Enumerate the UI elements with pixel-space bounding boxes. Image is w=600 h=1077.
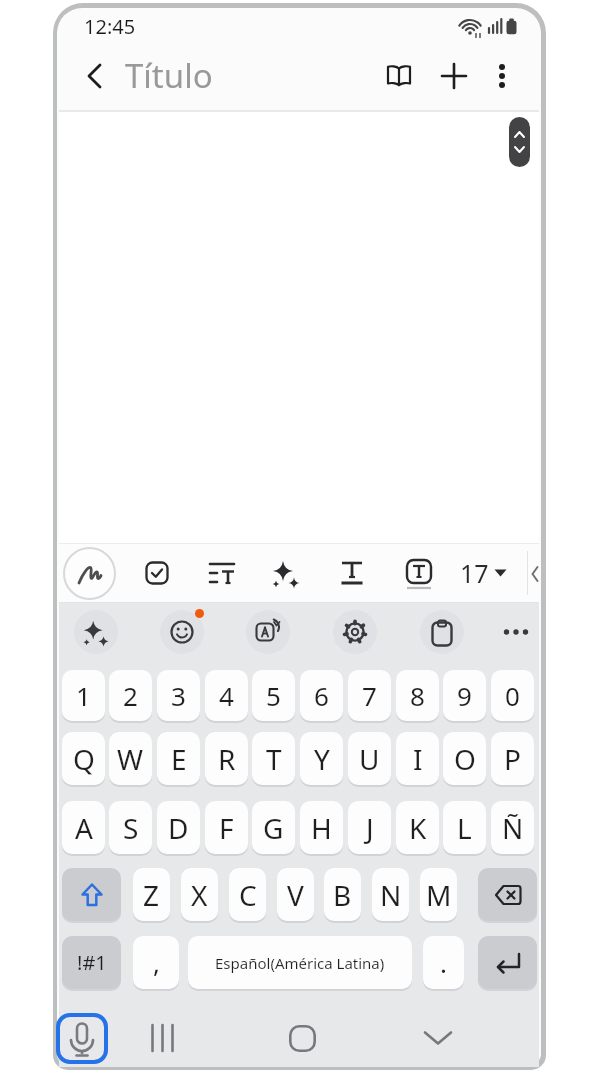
button[interactable] (62, 868, 121, 921)
button[interactable] (400, 555, 438, 593)
button[interactable]: 9 (443, 670, 486, 721)
button[interactable]: 8 (396, 670, 439, 721)
button[interactable]: N (372, 868, 409, 921)
staticText: Español(América Latina) (215, 953, 385, 973)
button[interactable] (334, 555, 370, 591)
button[interactable]: 4 (205, 670, 248, 721)
button[interactable]: A (62, 801, 105, 854)
staticText: Z (143, 876, 160, 914)
button[interactable] (139, 555, 175, 591)
button[interactable]: H (300, 801, 343, 854)
button[interactable]: 7 (348, 670, 391, 721)
button[interactable]: Español(América Latina) (188, 936, 412, 989)
staticText: G (263, 809, 284, 847)
staticText: C (239, 876, 257, 914)
staticText: Y (314, 740, 330, 778)
button[interactable]: X (181, 868, 218, 921)
button[interactable]: B (324, 868, 361, 921)
button[interactable] (56, 1013, 108, 1064)
button[interactable] (143, 1018, 183, 1058)
button[interactable]: L (443, 801, 486, 854)
staticText: D (168, 809, 189, 847)
button[interactable]: 2 (109, 670, 152, 721)
button[interactable] (494, 610, 538, 654)
button[interactable]: T (252, 732, 295, 785)
button[interactable]: I (396, 732, 439, 785)
staticText: 8 (410, 678, 425, 713)
staticText: A (75, 809, 93, 847)
staticText: Ñ (502, 809, 524, 847)
button[interactable] (333, 610, 377, 654)
staticText: L (457, 809, 472, 847)
button[interactable]: D (157, 801, 200, 854)
staticText: 12:45 (84, 13, 136, 40)
staticText: S (123, 809, 139, 847)
staticText: , (153, 945, 160, 980)
button[interactable] (437, 58, 471, 94)
button[interactable]: Q (62, 732, 105, 785)
button[interactable]: F (205, 801, 248, 854)
button[interactable] (160, 610, 204, 654)
button[interactable]: W (109, 732, 152, 785)
staticText: Q (73, 740, 95, 778)
button[interactable]: C (229, 868, 266, 921)
button[interactable]: 3 (157, 670, 200, 721)
button[interactable]: K (396, 801, 439, 854)
staticText: J (366, 809, 374, 847)
button[interactable] (478, 868, 537, 921)
button[interactable]: M (420, 868, 457, 921)
button[interactable] (509, 117, 530, 167)
button[interactable]: , (133, 936, 179, 989)
staticText: 4 (219, 678, 234, 713)
button[interactable]: 0 (491, 670, 534, 721)
button[interactable]: G (252, 801, 295, 854)
staticText: W (117, 740, 144, 778)
button[interactable] (478, 936, 537, 989)
button[interactable] (268, 555, 304, 591)
staticText: B (333, 876, 352, 914)
button[interactable] (246, 610, 290, 654)
button[interactable]: 1 (62, 670, 105, 721)
staticText: 1 (76, 678, 91, 713)
button[interactable]: 6 (300, 670, 343, 721)
staticText: F (219, 809, 234, 847)
button[interactable]: J (348, 801, 391, 854)
staticText: 2 (123, 678, 138, 713)
button[interactable]: 5 (252, 670, 295, 721)
button[interactable]: U (348, 732, 391, 785)
staticText: . (440, 945, 447, 980)
staticText: 6 (314, 678, 329, 713)
button[interactable] (418, 1018, 458, 1058)
staticText: M (426, 876, 452, 914)
button[interactable] (63, 547, 116, 600)
button[interactable] (487, 58, 517, 94)
button[interactable] (204, 555, 240, 591)
staticText: 9 (457, 678, 472, 713)
staticText: R (218, 740, 236, 778)
staticText: 3 (171, 678, 186, 713)
button[interactable]: O (443, 732, 486, 785)
staticText: X (191, 876, 208, 914)
staticText: 0 (505, 678, 520, 713)
button[interactable] (74, 610, 118, 654)
button[interactable]: R (205, 732, 248, 785)
button[interactable]: S (109, 801, 152, 854)
button[interactable]: E (157, 732, 200, 785)
staticText: 7 (362, 678, 377, 713)
button[interactable]: Z (133, 868, 170, 921)
staticText: T (266, 740, 282, 778)
button[interactable] (381, 58, 417, 94)
button[interactable]: !#1 (62, 936, 121, 989)
staticText: U (359, 740, 380, 778)
button[interactable]: V (277, 868, 314, 921)
button[interactable]: 17 (460, 551, 510, 595)
staticText: I (413, 740, 423, 778)
button[interactable] (282, 1018, 322, 1058)
button[interactable] (420, 610, 464, 654)
button[interactable]: Y (300, 732, 343, 785)
staticText: 5 (266, 678, 281, 713)
button[interactable]: . (423, 936, 464, 989)
button[interactable]: P (491, 732, 534, 785)
button[interactable] (79, 60, 111, 92)
button[interactable]: Ñ (491, 801, 534, 854)
